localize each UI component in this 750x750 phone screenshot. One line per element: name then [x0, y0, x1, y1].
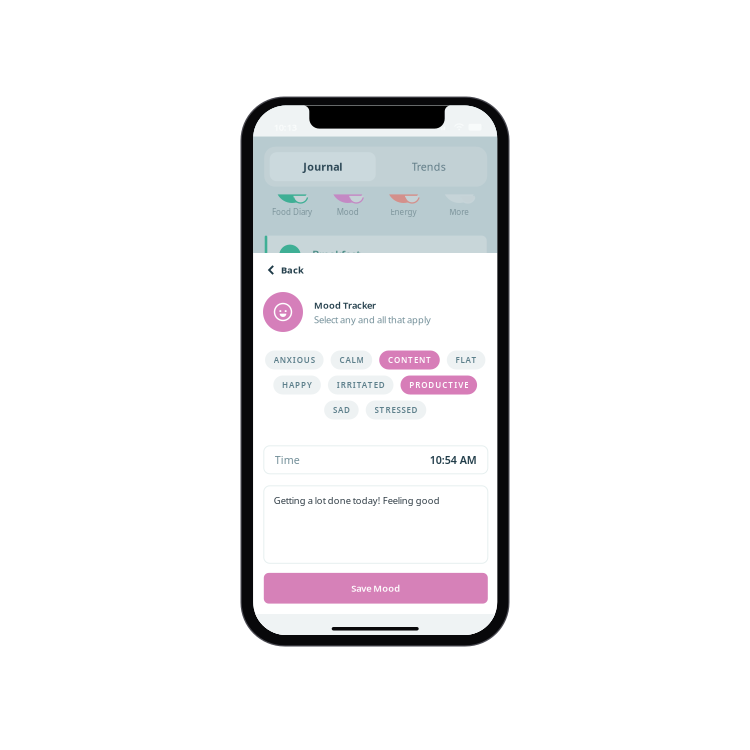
staticText: Journal [303, 160, 342, 174]
staticText: 10:13 [274, 121, 297, 133]
staticText: SAD [333, 405, 350, 415]
staticText: Save Mood [351, 582, 400, 594]
button[interactable]: Time [264, 446, 488, 474]
staticText: Mood Tracker [314, 299, 376, 311]
button[interactable]: CONTENT [379, 350, 440, 369]
staticText: Breakfast [312, 248, 360, 262]
staticText: 10:54 AM [430, 453, 477, 467]
staticText: CONTENT [388, 355, 431, 365]
staticText: HAPPY [282, 380, 312, 390]
staticText: FLAT [456, 355, 477, 365]
staticText: Trends [412, 160, 446, 174]
staticText: Select any and all that apply [314, 313, 431, 326]
button[interactable]: More [431, 195, 487, 217]
button[interactable]: Energy [376, 195, 431, 217]
staticText: CALM [339, 355, 363, 365]
button[interactable]: PRODUCTIVE [400, 375, 477, 394]
staticText: Energy [391, 206, 417, 217]
staticText: Back [281, 264, 304, 276]
button[interactable]: CALM [331, 350, 372, 369]
button[interactable]: Save Mood [264, 573, 488, 604]
button[interactable]: Food Diary [264, 195, 320, 217]
button[interactable]: Mood [320, 195, 376, 217]
button[interactable]: HAPPY [273, 375, 321, 394]
staticText: More [449, 206, 469, 217]
staticText: ANXIOUS [274, 355, 315, 365]
staticText: Food Diary [272, 206, 312, 217]
button[interactable]: Trends [376, 152, 482, 181]
staticText: STRESSED [374, 405, 417, 415]
staticText: Getting a lot done today! Feeling good [274, 494, 440, 507]
button[interactable]: Journal [270, 152, 376, 181]
button[interactable]: Back [253, 259, 313, 281]
button[interactable]: SAD [324, 400, 359, 419]
staticText: IRRITATED [337, 380, 385, 390]
button[interactable]: IRRITATED [328, 375, 393, 394]
button[interactable]: STRESSED [366, 400, 426, 419]
staticText: Time [275, 453, 300, 467]
staticText: Mood [337, 206, 359, 217]
staticText: PRODUCTIVE [409, 380, 468, 390]
button[interactable]: ANXIOUS [265, 350, 324, 369]
button[interactable]: FLAT [447, 350, 485, 369]
